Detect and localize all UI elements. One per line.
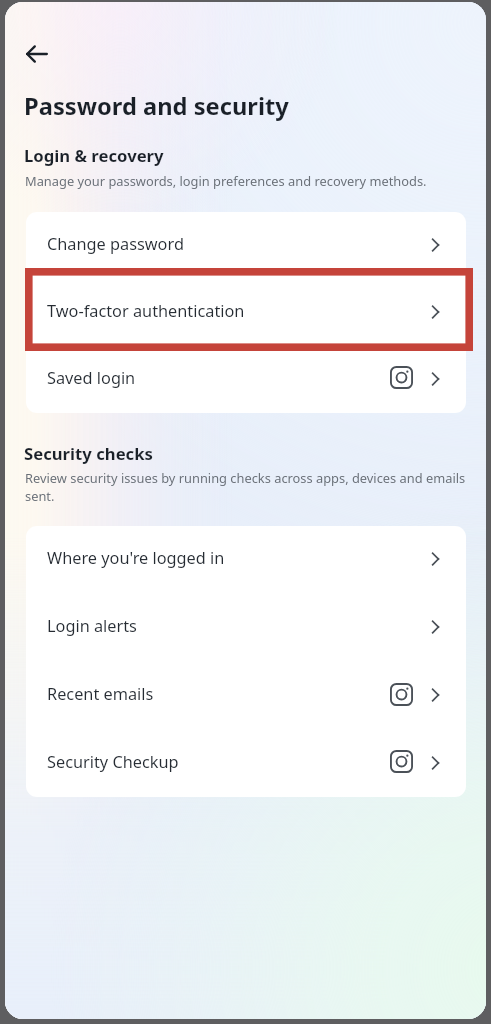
staticText: Manage your passwords, login preferences…: [25, 172, 427, 190]
staticText: Change password: [47, 233, 426, 255]
staticText: Two-factor authentication: [47, 300, 426, 322]
button[interactable]: Security Checkup: [26, 730, 466, 797]
staticText: Where you're logged in: [47, 547, 426, 569]
other: Instagram: [390, 683, 413, 706]
button[interactable]: Where you're logged in: [26, 526, 466, 594]
button[interactable]: Two-factor authentication: [26, 279, 466, 346]
staticText: Security checks: [24, 442, 153, 465]
staticText: Password and security: [24, 90, 289, 122]
button[interactable]: Saved login: [26, 346, 466, 413]
other: Instagram: [390, 366, 413, 389]
button[interactable]: Change password: [26, 212, 466, 279]
staticText: Security Checkup: [47, 751, 390, 773]
button[interactable]: Recent emails: [26, 662, 466, 730]
staticText: Recent emails: [47, 683, 390, 705]
other: Instagram: [390, 750, 413, 773]
staticText: Saved login: [47, 367, 390, 389]
button[interactable]: Back: [20, 37, 54, 71]
button[interactable]: Login alerts: [26, 594, 466, 662]
staticText: Review security issues by running checks…: [25, 469, 467, 505]
staticText: Login alerts: [47, 615, 426, 637]
staticText: Login & recovery: [24, 144, 164, 167]
